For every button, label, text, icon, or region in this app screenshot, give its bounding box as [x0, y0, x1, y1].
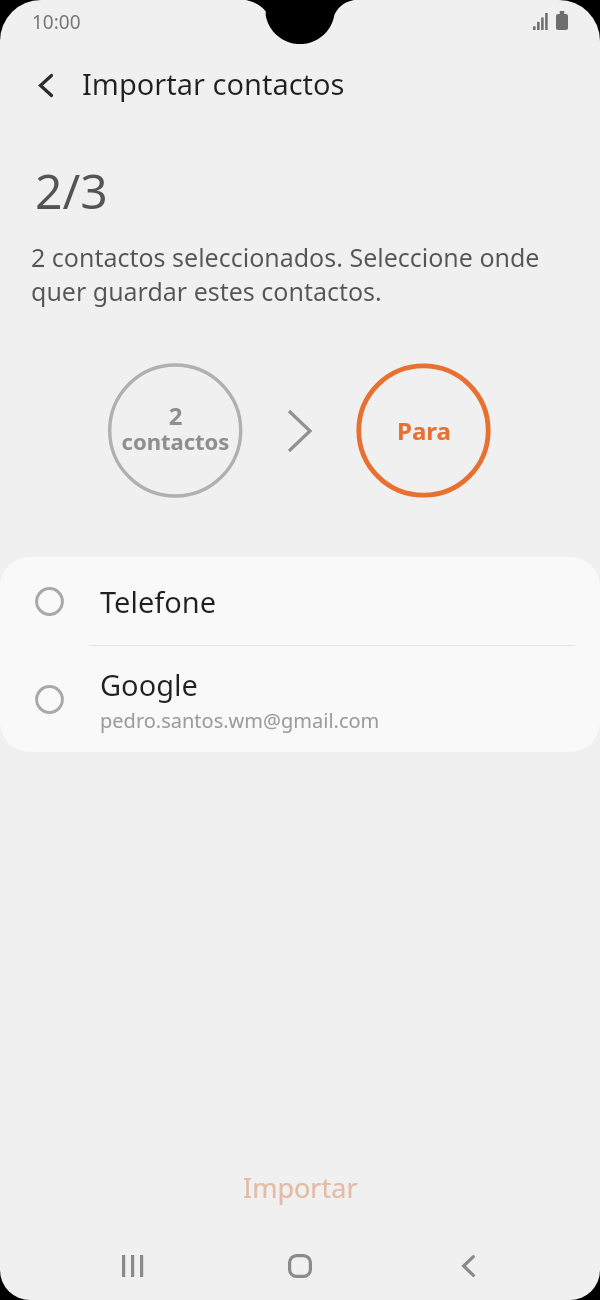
staticText: pedro.santos.wm@gmail.com	[100, 707, 380, 734]
staticText: Telefone	[100, 582, 217, 621]
staticText: 2/3	[35, 158, 108, 223]
button[interactable]: Google	[0, 646, 600, 752]
staticText: 2	[110, 399, 241, 432]
staticText: contactos	[110, 426, 241, 456]
staticText: 10:00	[32, 9, 81, 35]
button[interactable]: Telefone	[0, 557, 600, 645]
staticText: Importar	[243, 1169, 358, 1206]
staticText: Para	[397, 414, 451, 447]
button[interactable]: Recents	[103, 1236, 163, 1296]
staticText: 2 contactos seleccionados. Seleccione on…	[31, 240, 540, 308]
button[interactable]: Back	[438, 1236, 498, 1296]
staticText: Google	[100, 665, 198, 704]
staticText: Importar contactos	[82, 64, 345, 103]
button[interactable]: Home	[270, 1236, 330, 1296]
button[interactable]: Back	[20, 59, 72, 111]
button[interactable]: Importar	[0, 1158, 600, 1216]
